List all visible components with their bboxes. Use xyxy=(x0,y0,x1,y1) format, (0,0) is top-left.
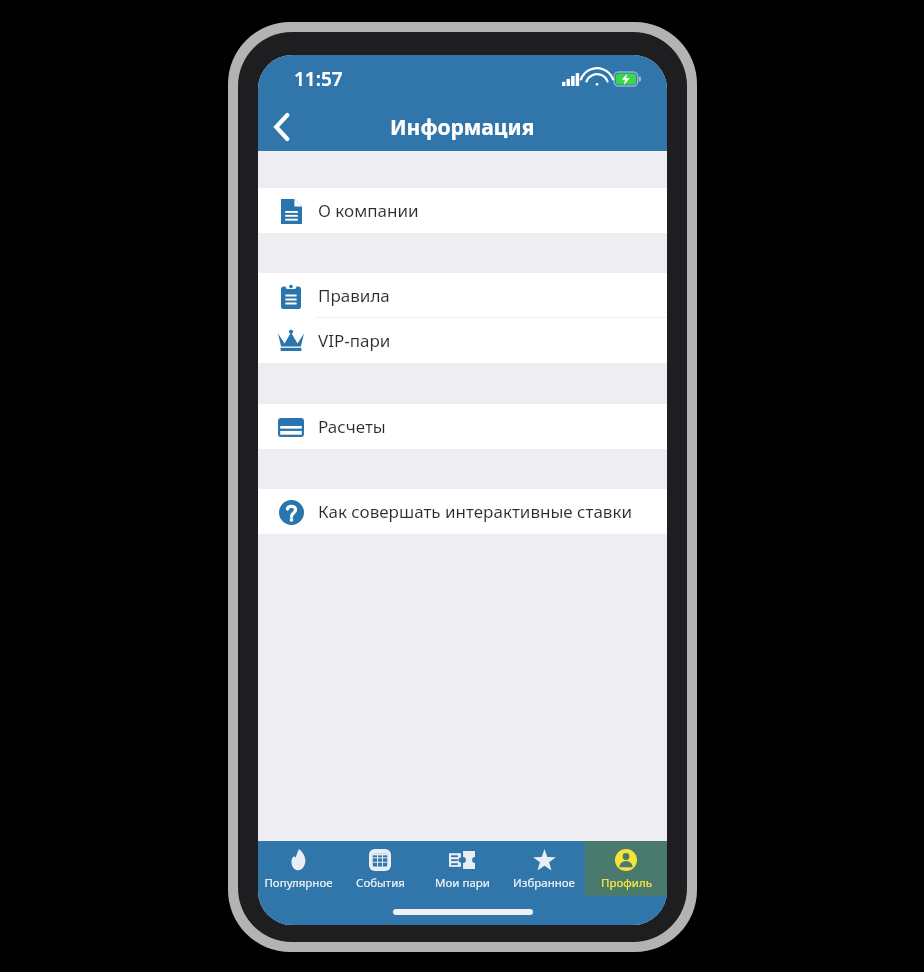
staticText: Правила xyxy=(318,284,390,307)
staticText: Как совершать интерактивные ставки xyxy=(318,500,633,523)
staticText: О компании xyxy=(318,199,419,222)
staticText: Профиль xyxy=(601,875,652,891)
staticText: Популярное xyxy=(264,875,333,891)
staticText: 11:57 xyxy=(294,66,343,92)
staticText: События xyxy=(356,875,405,891)
button[interactable]: Правила xyxy=(258,273,667,318)
button[interactable]: Популярное xyxy=(258,841,339,896)
button[interactable]: О компании xyxy=(258,188,667,233)
button[interactable]: События xyxy=(339,841,421,896)
staticText: Расчеты xyxy=(318,415,386,438)
button[interactable]: Back xyxy=(258,103,306,151)
button[interactable]: Избранное xyxy=(503,841,585,896)
staticText: Избранное xyxy=(513,875,575,891)
button[interactable]: Расчеты xyxy=(258,404,667,449)
button[interactable]: Профиль xyxy=(585,841,667,896)
button[interactable]: Как совершать интерактивные ставки xyxy=(258,489,667,534)
button[interactable]: Мои пари xyxy=(421,841,503,896)
staticText: Информация xyxy=(390,113,535,142)
staticText: VIP-пари xyxy=(318,329,391,352)
button[interactable]: VIP-пари xyxy=(258,318,667,363)
staticText: Мои пари xyxy=(435,875,490,891)
